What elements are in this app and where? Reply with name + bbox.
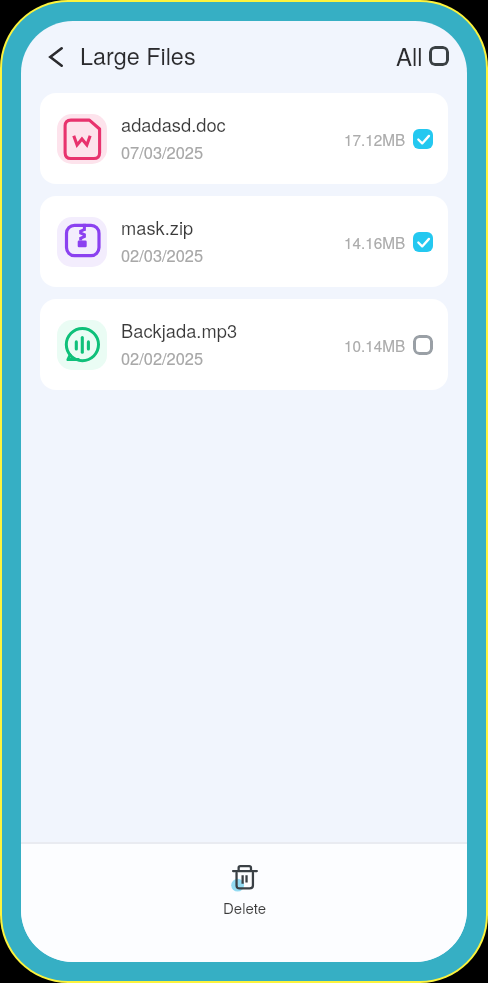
button[interactable]: Select file — [413, 129, 433, 149]
button[interactable]: adadasd.doc — [40, 93, 448, 184]
staticText: Backjada.mp3 — [121, 317, 238, 343]
button[interactable]: Select file — [413, 335, 433, 355]
staticText: Large Files — [80, 38, 196, 72]
button[interactable]: Select file — [413, 232, 433, 252]
staticText: 02/03/2025 — [121, 243, 204, 266]
staticText: 02/02/2025 — [121, 346, 204, 369]
staticText: mask.zip — [121, 214, 194, 240]
button[interactable]: All — [394, 35, 451, 77]
button[interactable]: Delete — [199, 844, 290, 918]
staticText: 10.14MB — [344, 334, 406, 356]
staticText: 14.16MB — [344, 231, 406, 253]
staticText: All — [396, 38, 423, 72]
staticText: 07/03/2025 — [121, 140, 204, 163]
button[interactable]: Backjada.mp3 — [40, 299, 448, 390]
button[interactable]: mask.zip — [40, 196, 448, 287]
staticText: 17.12MB — [344, 128, 406, 150]
button[interactable]: Back — [38, 39, 74, 75]
staticText: adadasd.doc — [121, 111, 226, 137]
staticText: Delete — [223, 897, 266, 918]
